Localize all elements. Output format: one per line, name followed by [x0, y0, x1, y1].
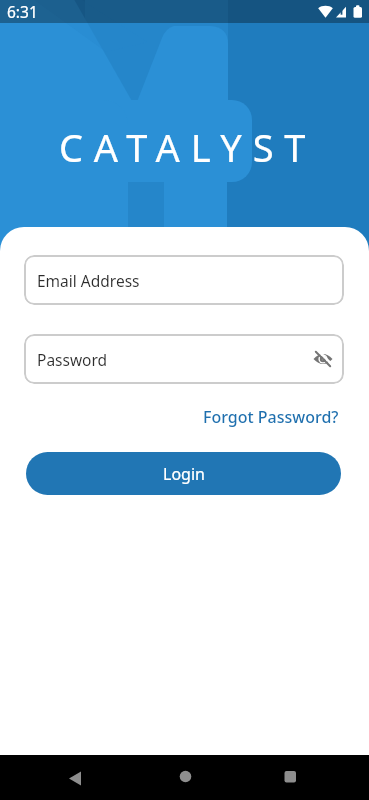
- button[interactable]: Forgot Password?: [203, 406, 339, 428]
- button[interactable]: [165, 757, 205, 797]
- staticText: CATALYST: [59, 121, 317, 173]
- staticText: Email Address: [37, 270, 140, 291]
- button[interactable]: [270, 757, 310, 797]
- button[interactable]: Email Address: [24, 255, 344, 305]
- button[interactable]: Password: [24, 334, 344, 384]
- staticText: Password: [37, 349, 108, 370]
- staticText: Forgot Password?: [203, 406, 339, 428]
- staticText: 6:31: [7, 1, 38, 22]
- button[interactable]: [56, 757, 96, 797]
- button[interactable]: [312, 348, 334, 370]
- staticText: Login: [163, 463, 205, 485]
- button[interactable]: Login: [26, 452, 341, 495]
